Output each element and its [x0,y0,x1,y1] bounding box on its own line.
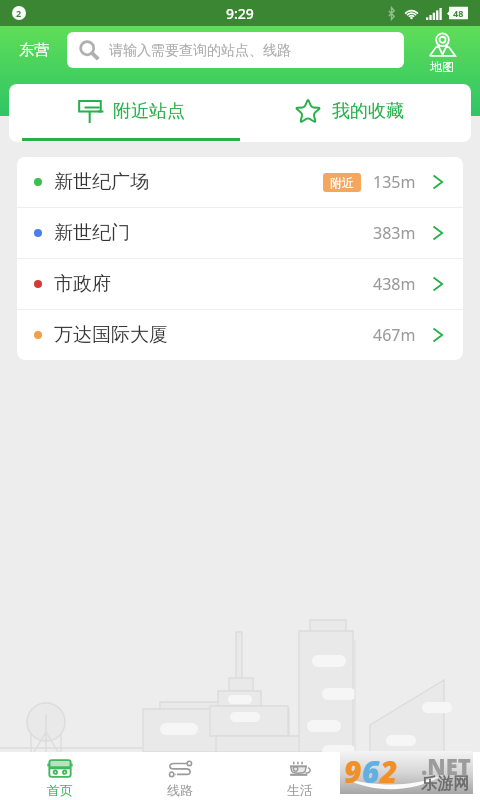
staticText: 请输入需要查询的站点、线路 [109,42,291,60]
staticText: 市政府 [54,272,111,296]
staticText: 2 [16,7,22,19]
staticText: 438m [373,273,416,295]
button[interactable]: 东营 [0,32,67,68]
button[interactable]: 我的收藏 [240,84,471,139]
button[interactable]: 新世纪广场 [17,157,463,207]
staticText: 48 [453,7,464,19]
staticText: 地图 [430,59,454,74]
staticText: 万达国际大厦 [54,323,168,347]
button[interactable]: 新世纪门 [17,208,463,258]
button[interactable]: 地图 [404,32,480,84]
button[interactable]: 生活 [240,752,360,800]
staticText: 9:29 [226,4,254,23]
staticText: 附近站点 [113,100,185,123]
button[interactable]: 首页 [0,752,120,800]
staticText: 467m [373,324,416,346]
button[interactable]: 万达国际大厦 [17,310,463,360]
staticText: 383m [373,222,416,244]
button[interactable]: 附近站点 [9,84,240,139]
staticText: .NET [421,751,471,781]
button[interactable]: 市政府 [17,259,463,309]
staticText: 附近 [330,175,354,190]
button[interactable]: 线路 [120,752,240,800]
staticText: 新世纪门 [54,221,130,245]
staticText: 东营 [19,41,49,60]
staticText: 6 [362,751,380,792]
staticText: 我的收藏 [332,100,404,123]
staticText: 新世纪广场 [54,170,149,194]
staticText: 生活 [287,782,313,798]
staticText: 首页 [47,782,73,798]
staticText: 9 [344,751,362,792]
staticText: 线路 [167,782,193,798]
staticText: 2 [380,751,398,792]
staticText: 135m [373,171,416,193]
button[interactable]: 请输入需要查询的站点、线路 [67,32,404,68]
staticText: 乐游网 [421,774,469,794]
